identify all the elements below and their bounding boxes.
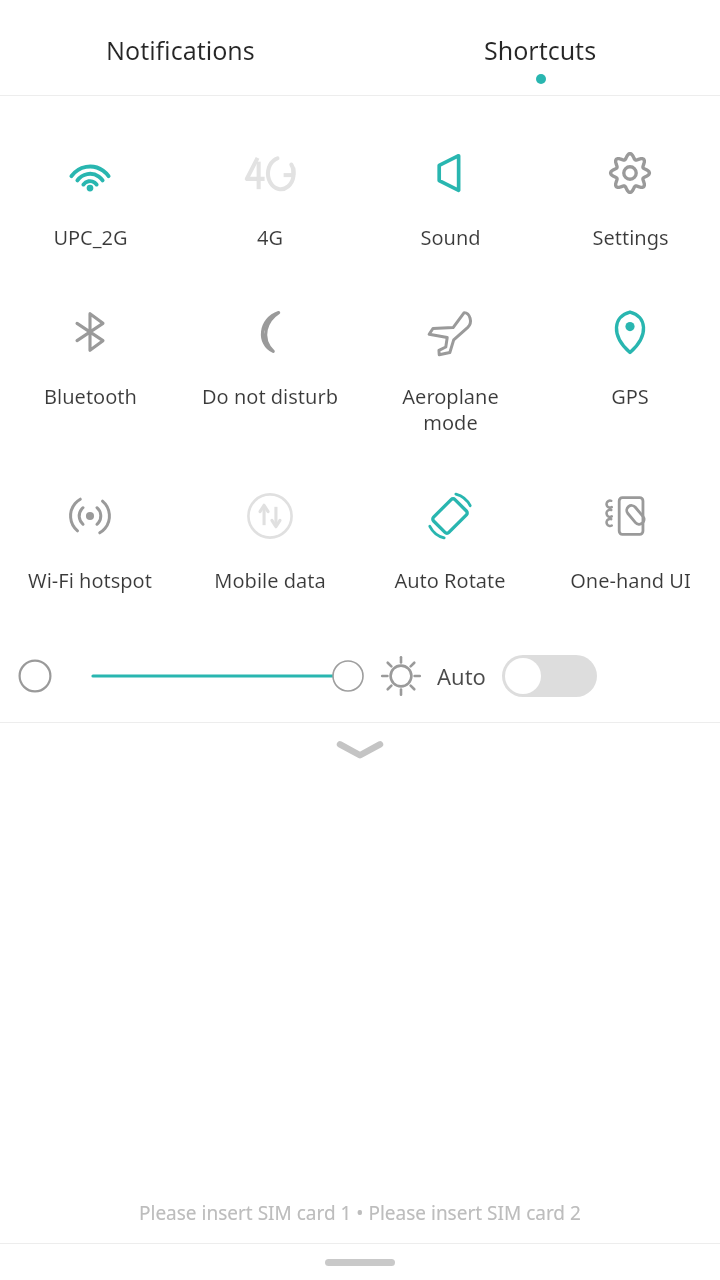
staticText: Auto Rotate	[394, 567, 506, 594]
other: GPS	[601, 303, 659, 361]
button[interactable]: Notifications	[0, 0, 360, 95]
other: Aeroplane mode	[421, 303, 479, 361]
staticText: Do not disturb	[202, 383, 338, 410]
button[interactable]: Do not disturb	[180, 303, 360, 410]
other: One-hand UI	[601, 487, 659, 545]
button[interactable]: Wi-Fi	[0, 144, 180, 251]
staticText: Notifications	[106, 33, 255, 67]
other: Mobile data	[241, 487, 299, 545]
staticText: UPC_2G	[53, 224, 128, 251]
staticText: Bluetooth	[44, 383, 137, 410]
button[interactable]: Auto	[437, 641, 720, 711]
button[interactable]: Shortcuts	[360, 0, 720, 95]
button[interactable]: Sound	[360, 144, 540, 251]
staticText: Auto	[437, 661, 486, 691]
button[interactable]: Wi-Fi hotspot	[0, 487, 180, 594]
button[interactable]: 4G network	[180, 144, 360, 251]
staticText: Please insert SIM card 1 • Please insert…	[139, 1200, 581, 1226]
button[interactable]: One-hand UI	[540, 487, 720, 594]
staticText: 4G	[257, 224, 283, 251]
other: Wi-Fi	[61, 144, 119, 202]
button[interactable]: Mobile data	[180, 487, 360, 594]
button[interactable]: GPS	[540, 303, 720, 410]
button[interactable]: Aeroplane mode	[360, 303, 540, 435]
button[interactable]: Auto Rotate	[360, 487, 540, 594]
button[interactable]: Collapse	[0, 723, 720, 775]
button[interactable]: Low brightness	[0, 641, 70, 711]
other: Bluetooth	[61, 303, 119, 361]
staticText: Aeroplane mode	[402, 383, 499, 435]
staticText: Mobile data	[214, 567, 326, 594]
other: Settings	[601, 144, 659, 202]
other: Sound	[421, 144, 479, 202]
other: Wi-Fi hotspot	[61, 487, 119, 545]
button[interactable]: Bluetooth	[0, 303, 180, 410]
staticText: Sound	[420, 224, 481, 251]
other: Do not disturb	[241, 303, 299, 361]
other: 4G network	[241, 144, 299, 202]
other: Auto Rotate	[421, 487, 479, 545]
button[interactable]: Brightness slider	[70, 641, 365, 711]
staticText: Wi-Fi hotspot	[28, 567, 152, 594]
button[interactable]: Settings	[540, 144, 720, 251]
staticText: GPS	[611, 383, 649, 410]
staticText: One-hand UI	[570, 567, 691, 594]
staticText: Shortcuts	[484, 33, 597, 67]
button[interactable]: High brightness	[365, 641, 437, 711]
staticText: Settings	[592, 224, 669, 251]
